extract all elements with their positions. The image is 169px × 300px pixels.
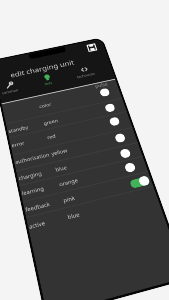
staticText: blue bbox=[55, 163, 68, 173]
button[interactable]: charging bbox=[16, 142, 143, 186]
button[interactable]: learning bbox=[19, 156, 148, 201]
button[interactable]: Toggle pulse bbox=[114, 131, 135, 143]
staticText: active bbox=[28, 213, 68, 230]
staticText: feedback bbox=[25, 197, 64, 213]
button[interactable]: Toggle pulse bbox=[124, 160, 145, 173]
staticText: learning bbox=[21, 181, 60, 196]
button[interactable]: Toggle pulse bbox=[104, 101, 124, 113]
staticText: leds bbox=[44, 80, 54, 87]
staticText: technician bbox=[76, 71, 96, 80]
staticText: edit charging unit bbox=[9, 58, 75, 80]
button[interactable]: Toggle pulse bbox=[119, 146, 140, 159]
button[interactable]: Save bbox=[86, 43, 98, 52]
staticText: blue bbox=[67, 210, 81, 220]
staticText: color bbox=[38, 101, 52, 109]
button[interactable]: error bbox=[9, 112, 132, 153]
staticText: green bbox=[43, 117, 59, 126]
staticText: common bbox=[2, 88, 19, 96]
staticText: yellow bbox=[50, 147, 69, 156]
staticText: authorisation bbox=[14, 150, 52, 165]
button[interactable]: standby bbox=[6, 98, 127, 138]
button[interactable]: Toggle pulse bbox=[109, 114, 129, 127]
button[interactable]: color bbox=[2, 82, 121, 121]
button[interactable]: authorisation bbox=[12, 127, 137, 170]
button[interactable]: technician bbox=[66, 63, 105, 87]
button[interactable]: leds bbox=[29, 71, 68, 96]
staticText: charging bbox=[18, 166, 56, 181]
staticText: pulse bbox=[94, 81, 108, 89]
staticText: red bbox=[46, 132, 56, 140]
button[interactable]: Toggle pulse bbox=[99, 86, 119, 97]
staticText: error bbox=[11, 134, 48, 148]
button[interactable]: active bbox=[26, 187, 159, 235]
button[interactable]: Toggle pulse bbox=[129, 175, 151, 189]
button[interactable]: feedback bbox=[22, 171, 154, 218]
staticText: orange bbox=[58, 176, 79, 187]
staticText: standby bbox=[8, 120, 44, 134]
button[interactable]: common bbox=[0, 78, 30, 103]
staticText: pink bbox=[62, 194, 76, 203]
